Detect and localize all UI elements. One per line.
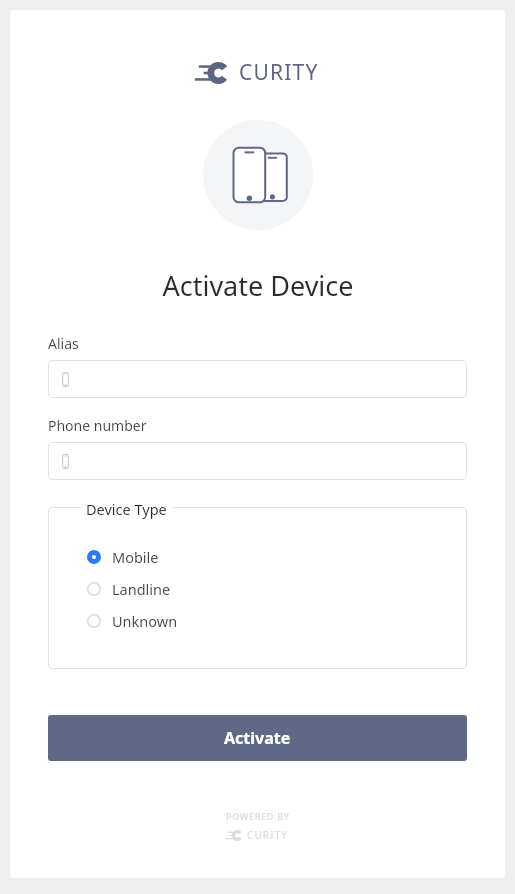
button[interactable]: Mobile (87, 541, 451, 573)
staticText: Alias (48, 334, 79, 353)
staticText: Device Type (86, 499, 167, 519)
staticText: Unknown (112, 611, 178, 631)
staticText: Phone number (48, 416, 147, 435)
staticText: Activate (224, 727, 291, 749)
button[interactable]: Unknown (87, 605, 451, 637)
staticText: Activate Device (162, 267, 354, 304)
staticText: Landline (112, 579, 171, 599)
staticText: CURITY (247, 828, 289, 842)
button[interactable]: Phone number input field (48, 442, 467, 480)
button[interactable]: Activate (48, 715, 467, 761)
button[interactable]: Landline (87, 573, 451, 605)
staticText: Mobile (112, 547, 159, 567)
staticText: CURITY (239, 58, 319, 87)
button[interactable]: Alias input field (48, 360, 467, 398)
staticText: POWERED BY (226, 810, 290, 822)
